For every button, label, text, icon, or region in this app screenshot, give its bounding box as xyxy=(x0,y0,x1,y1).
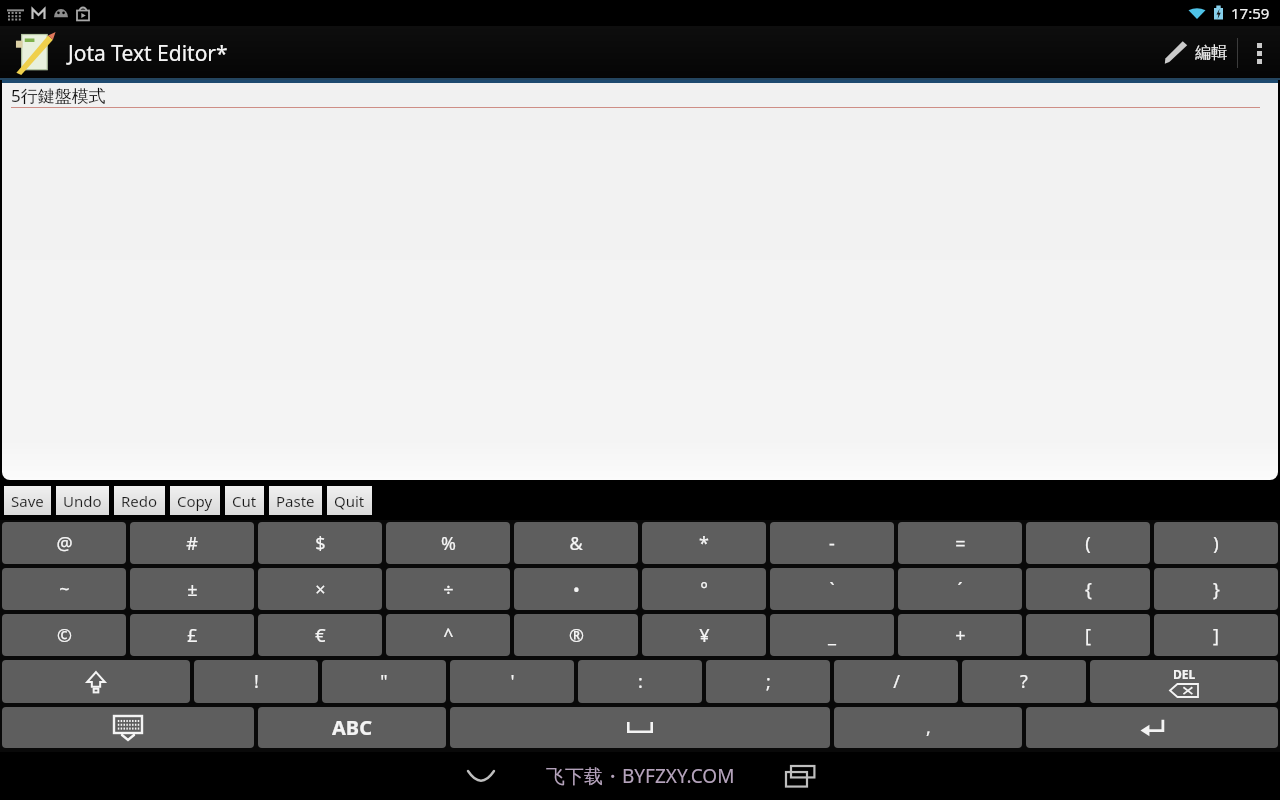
button[interactable]: More options xyxy=(1238,26,1280,80)
button[interactable]: 5行鍵盤模式 xyxy=(2,80,1278,480)
button[interactable]: = xyxy=(898,522,1022,564)
button[interactable]: Recent apps xyxy=(769,756,831,796)
staticText: 17:59 xyxy=(1231,3,1270,23)
staticText: " xyxy=(380,669,388,694)
button[interactable]: ÷ xyxy=(386,568,510,610)
button[interactable]: ^ xyxy=(386,614,510,656)
staticText: ( xyxy=(1085,531,1091,556)
button[interactable]: × xyxy=(258,568,382,610)
staticText: ! xyxy=(254,669,259,694)
button[interactable]: ] xyxy=(1154,614,1278,656)
staticText: , xyxy=(926,715,931,740)
staticText: # xyxy=(186,531,198,556)
staticText: ? xyxy=(1020,669,1028,694)
staticText: } xyxy=(1213,577,1220,602)
staticText: = xyxy=(955,531,966,556)
button[interactable]: Shift xyxy=(2,660,190,703)
staticText: Cut xyxy=(232,491,257,511)
button[interactable]: € xyxy=(258,614,382,656)
staticText: { xyxy=(1085,577,1092,602)
button[interactable]: Hide keyboard xyxy=(2,707,254,748)
button[interactable]: { xyxy=(1026,568,1150,610)
button[interactable]: ± xyxy=(130,568,254,610)
button[interactable]: Jota Text Editor* xyxy=(12,31,228,75)
button[interactable]: Enter xyxy=(1026,707,1278,748)
staticText: * xyxy=(699,531,709,556)
staticText: / xyxy=(893,669,900,694)
staticText: + xyxy=(955,623,966,648)
staticText: Quit xyxy=(334,491,365,511)
button[interactable]: ' xyxy=(450,660,574,703)
button[interactable]: Paste xyxy=(269,486,322,515)
button[interactable]: # xyxy=(130,522,254,564)
staticText: ; xyxy=(766,669,771,694)
button[interactable]: & xyxy=(514,522,638,564)
button[interactable]: } xyxy=(1154,568,1278,610)
button[interactable]: [ xyxy=(1026,614,1150,656)
button[interactable]: ) xyxy=(1154,522,1278,564)
button[interactable]: ? xyxy=(962,660,1086,703)
button[interactable]: : xyxy=(578,660,702,703)
staticText: ` xyxy=(829,577,835,602)
staticText: × xyxy=(315,577,326,602)
button[interactable]: , xyxy=(834,707,1022,748)
staticText: Undo xyxy=(63,491,102,511)
staticText: Copy xyxy=(177,491,213,511)
button[interactable]: ! xyxy=(194,660,318,703)
button[interactable]: * xyxy=(642,522,766,564)
button[interactable]: ABC xyxy=(258,707,446,748)
button[interactable]: ° xyxy=(642,568,766,610)
button[interactable]: Quit xyxy=(327,486,372,515)
button[interactable]: Undo xyxy=(56,486,109,515)
button[interactable]: 編輯 xyxy=(1152,26,1237,80)
button[interactable]: ¥ xyxy=(642,614,766,656)
staticText: % xyxy=(441,531,456,556)
staticText: DEL xyxy=(1173,666,1196,682)
staticText: & xyxy=(569,531,583,556)
button[interactable]: • xyxy=(514,568,638,610)
staticText: ABC xyxy=(332,714,372,741)
button[interactable]: Space xyxy=(450,707,830,748)
button[interactable]: @ xyxy=(2,522,126,564)
staticText: € xyxy=(315,623,326,648)
button[interactable]: ® xyxy=(514,614,638,656)
staticText: © xyxy=(57,623,72,648)
button[interactable]: _ xyxy=(770,614,894,656)
staticText: ) xyxy=(1213,531,1219,556)
staticText: Redo xyxy=(121,491,158,511)
staticText: - xyxy=(829,531,835,556)
button[interactable]: ´ xyxy=(898,568,1022,610)
staticText: @ xyxy=(56,531,73,556)
button[interactable]: Cut xyxy=(225,486,264,515)
button[interactable]: Back xyxy=(450,756,512,796)
staticText: 編輯 xyxy=(1195,43,1227,63)
button[interactable]: £ xyxy=(130,614,254,656)
button[interactable]: / xyxy=(834,660,958,703)
button[interactable]: - xyxy=(770,522,894,564)
staticText: ] xyxy=(1213,623,1219,648)
staticText: _ xyxy=(828,623,836,648)
staticText: : xyxy=(638,669,643,694)
staticText: £ xyxy=(187,623,198,648)
button[interactable]: " xyxy=(322,660,446,703)
button[interactable]: ` xyxy=(770,568,894,610)
staticText: Jota Text Editor* xyxy=(68,39,228,68)
staticText: ® xyxy=(569,623,584,648)
button[interactable]: ; xyxy=(706,660,830,703)
staticText: ' xyxy=(510,669,515,694)
button[interactable]: ~ xyxy=(2,568,126,610)
button[interactable]: © xyxy=(2,614,126,656)
button[interactable]: % xyxy=(386,522,510,564)
staticText: ÷ xyxy=(443,577,454,602)
staticText: ± xyxy=(187,577,198,602)
button[interactable]: ( xyxy=(1026,522,1150,564)
staticText: [ xyxy=(1085,623,1091,648)
button[interactable]: Save xyxy=(4,486,51,515)
button[interactable]: Delete xyxy=(1090,660,1278,703)
button[interactable]: $ xyxy=(258,522,382,564)
staticText: $ xyxy=(315,531,326,556)
button[interactable]: Redo xyxy=(114,486,165,515)
staticText: ^ xyxy=(443,623,454,648)
button[interactable]: + xyxy=(898,614,1022,656)
button[interactable]: Copy xyxy=(170,486,220,515)
